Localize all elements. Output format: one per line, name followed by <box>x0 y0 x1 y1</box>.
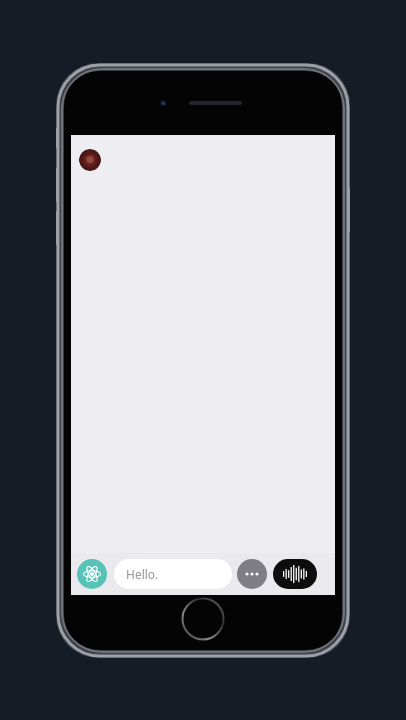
button[interactable]: Home <box>181 597 225 641</box>
button[interactable]: Hello. <box>114 559 232 589</box>
staticText: Hello. <box>126 566 159 582</box>
button[interactable]: Record audio message <box>273 559 317 589</box>
button[interactable]: Apps <box>77 559 107 589</box>
button[interactable]: Contact avatar <box>79 149 101 171</box>
button[interactable]: More options <box>237 559 267 589</box>
